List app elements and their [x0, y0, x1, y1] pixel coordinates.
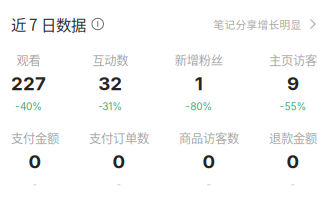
- staticText: 0: [112, 153, 125, 170]
- staticText: 互动数: [92, 54, 128, 66]
- staticText: 9: [287, 75, 299, 92]
- staticText: 主页访客: [269, 54, 317, 66]
- staticText: 32: [98, 75, 122, 92]
- staticText: -80%: [185, 102, 212, 111]
- button[interactable]: 笔记分享增长明显: [214, 18, 316, 29]
- staticText: 0: [286, 153, 299, 170]
- staticText: 笔记分享增长明显: [214, 18, 302, 29]
- staticText: 新增粉丝: [175, 54, 223, 66]
- staticText: 商品访客数: [179, 132, 239, 144]
- staticText: 1: [195, 75, 203, 92]
- staticText: -: [116, 180, 121, 189]
- staticText: -55%: [279, 102, 306, 111]
- staticText: 近 7 日数据: [11, 16, 86, 32]
- staticText: 227: [11, 75, 46, 92]
- staticText: 0: [202, 153, 215, 170]
- staticText: 退款金额: [269, 132, 317, 144]
- staticText: -: [290, 180, 295, 189]
- staticText: -40%: [15, 102, 42, 111]
- button[interactable]: 数据说明: [86, 18, 105, 30]
- staticText: -31%: [98, 102, 122, 111]
- staticText: 支付金额: [11, 132, 59, 144]
- staticText: -: [32, 180, 37, 189]
- staticText: 观看: [16, 54, 40, 66]
- staticText: -: [206, 180, 211, 189]
- staticText: 支付订单数: [89, 132, 149, 144]
- staticText: 0: [28, 153, 41, 170]
